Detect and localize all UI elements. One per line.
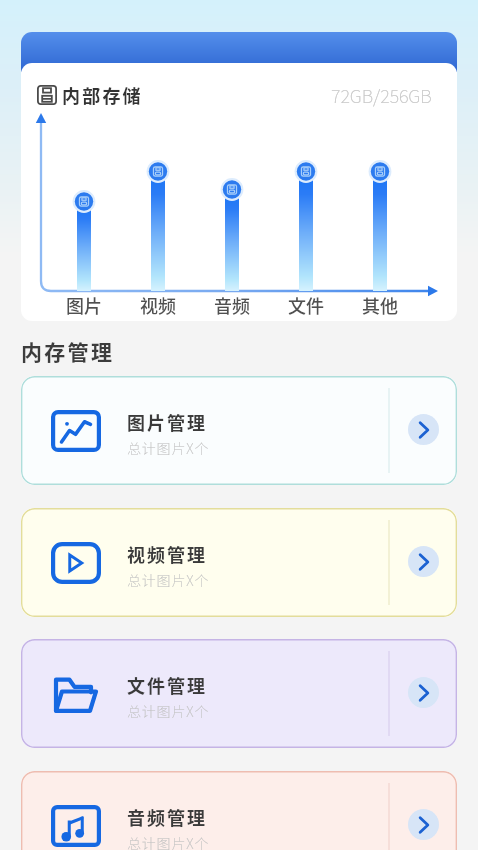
button[interactable]: 打开文件管理 <box>408 677 439 708</box>
button[interactable]: 打开音频管理 <box>408 809 439 840</box>
button[interactable]: 打开视频管理 <box>408 546 439 577</box>
staticText: 音频管理 <box>127 804 207 830</box>
staticText: 视频 <box>140 292 176 318</box>
staticText: 文件管理 <box>127 672 207 698</box>
staticText: 72GB/256GB <box>331 82 432 108</box>
staticText: 总计图片X个 <box>127 701 210 721</box>
staticText: 文件 <box>288 292 324 318</box>
staticText: 总计图片X个 <box>127 570 210 590</box>
staticText: 其他 <box>362 292 398 318</box>
staticText: 内存管理 <box>21 336 115 366</box>
button[interactable]: 文件管理 <box>21 639 457 748</box>
button[interactable]: 图片管理 <box>21 376 457 485</box>
staticText: 总计图片X个 <box>127 833 210 850</box>
staticText: 总计图片X个 <box>127 438 210 458</box>
staticText: 视频管理 <box>127 541 207 567</box>
staticText: 音频 <box>214 292 250 318</box>
staticText: 图片 <box>66 292 102 318</box>
button[interactable]: 打开图片管理 <box>408 414 439 445</box>
button[interactable]: 视频管理 <box>21 508 457 617</box>
staticText: 图片管理 <box>127 409 207 435</box>
button[interactable]: 音频管理 <box>21 771 457 850</box>
staticText: 内部存储 <box>62 82 143 108</box>
